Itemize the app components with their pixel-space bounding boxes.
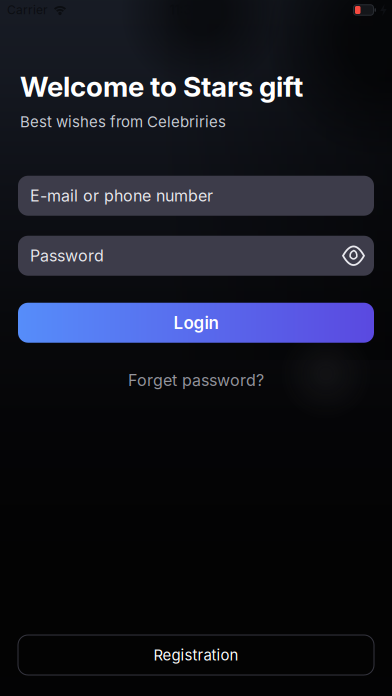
staticText: Carrier bbox=[7, 3, 48, 17]
button[interactable]: Registration bbox=[18, 635, 374, 675]
button[interactable]: E-mail or phone number bbox=[18, 176, 374, 216]
staticText: Welcome to Stars gift bbox=[20, 70, 303, 103]
button[interactable]: Forget password? bbox=[128, 371, 264, 390]
staticText: Registration bbox=[153, 646, 238, 664]
staticText: Login bbox=[173, 313, 218, 333]
staticText: Password bbox=[30, 246, 104, 265]
button[interactable]: Login bbox=[18, 303, 374, 343]
staticText: Forget password? bbox=[128, 371, 264, 390]
staticText: Best wishes from Celebriries bbox=[20, 113, 226, 131]
staticText: E-mail or phone number bbox=[30, 186, 213, 205]
button[interactable]: Password bbox=[18, 236, 374, 276]
